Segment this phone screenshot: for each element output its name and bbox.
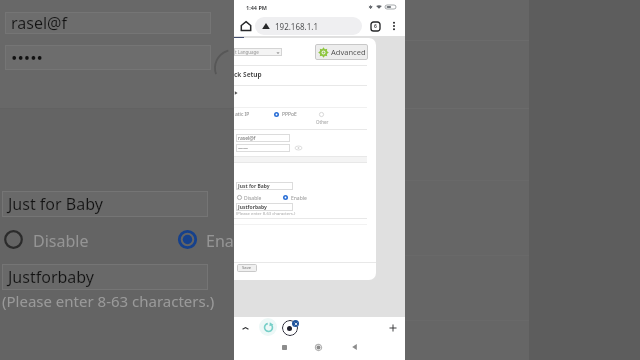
button[interactable]: Home xyxy=(238,18,254,34)
staticText: Advanced xyxy=(331,47,365,57)
staticText: Disable xyxy=(244,195,262,202)
staticText: (Please enter 8-63 characters.) xyxy=(236,211,296,217)
button[interactable]: Tabs xyxy=(367,18,383,34)
button[interactable]: Home xyxy=(309,338,327,356)
button[interactable]: Advanced xyxy=(315,44,368,60)
button[interactable]: Save xyxy=(237,264,257,272)
button[interactable]: More options xyxy=(386,18,401,33)
button[interactable]: New tab xyxy=(384,319,400,335)
staticText: Disable xyxy=(33,230,89,252)
button[interactable]: Expand toolbar xyxy=(238,320,252,334)
staticText: Enable xyxy=(291,195,307,202)
staticText: Save xyxy=(242,265,252,271)
staticText: rasel@f xyxy=(238,135,256,142)
staticText: ••••• xyxy=(11,46,43,69)
staticText: PPPoE xyxy=(282,111,297,118)
staticText: Justforbaby xyxy=(8,266,94,288)
staticText: Just for Baby xyxy=(8,193,103,215)
staticText: atic IP xyxy=(235,111,250,118)
button[interactable]: Recents xyxy=(275,338,293,356)
staticText: 192.168.1.1 xyxy=(275,21,319,32)
staticText: rasel@f xyxy=(11,12,67,34)
staticText: (Please enter 8-63 characters.) xyxy=(2,291,215,311)
staticText: —— xyxy=(238,145,249,152)
button[interactable]: 192.168.1.1 xyxy=(255,17,362,35)
staticText: Other xyxy=(316,119,329,125)
staticText: 6 xyxy=(374,23,377,30)
staticText: 1:44 PM xyxy=(246,4,268,11)
staticText: ck Setup xyxy=(234,70,262,79)
staticText: Justforbaby xyxy=(238,204,267,211)
staticText: Enab xyxy=(206,230,244,252)
staticText: t Language xyxy=(235,49,259,55)
button[interactable]: Reload xyxy=(259,318,277,336)
button[interactable]: Screen recorder xyxy=(282,320,298,336)
staticText: Just for Baby xyxy=(238,183,270,190)
button[interactable]: Back xyxy=(345,338,363,356)
